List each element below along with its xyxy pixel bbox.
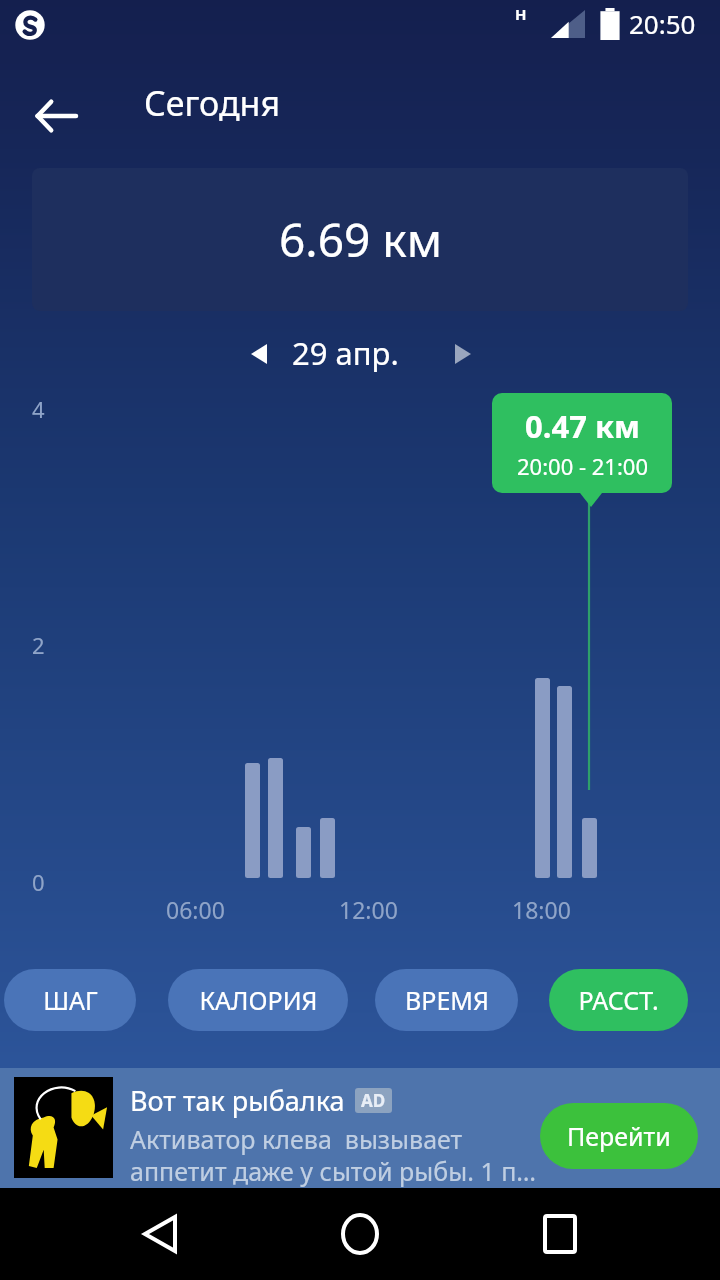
staticText: 18:00 xyxy=(512,894,571,925)
button[interactable]: Вот так рыбалка xyxy=(0,1068,720,1188)
staticText: РАССТ. xyxy=(578,983,659,1017)
button[interactable]: Home xyxy=(320,1194,400,1274)
button[interactable]: ВРЕМЯ xyxy=(375,969,518,1031)
button[interactable]: Back xyxy=(120,1194,200,1274)
staticText: 12:00 xyxy=(339,894,398,925)
staticText: КАЛОРИЯ xyxy=(199,983,318,1017)
button[interactable]: 6.69 км xyxy=(32,168,688,311)
button[interactable]: РАССТ. xyxy=(549,969,688,1031)
button[interactable]: Recents xyxy=(520,1194,600,1274)
staticText: ВРЕМЯ xyxy=(405,983,489,1017)
staticText: AD xyxy=(361,1089,386,1112)
staticText: 0 xyxy=(32,867,45,897)
staticText: Перейти xyxy=(567,1119,671,1153)
button[interactable]: Перейти xyxy=(540,1103,698,1169)
staticText: 0.47 км xyxy=(525,405,641,447)
staticText: 06:00 xyxy=(166,894,225,925)
staticText: аппетит даже у сытой рыбы. 1 п… xyxy=(130,1154,537,1188)
staticText: 20:00 - 21:00 xyxy=(517,451,648,481)
staticText: ШАГ xyxy=(43,983,98,1017)
button[interactable]: 0.47 км xyxy=(492,393,672,493)
staticText: 29 апр. xyxy=(292,332,399,374)
staticText: Сегодня xyxy=(144,80,281,126)
button[interactable]: Next day xyxy=(434,330,492,378)
staticText: Активатор клева вызывает xyxy=(130,1122,463,1156)
staticText: 4 xyxy=(32,394,45,424)
staticText: 2 xyxy=(32,630,45,660)
button[interactable]: Previous day xyxy=(230,330,288,378)
button[interactable]: ШАГ xyxy=(4,969,136,1031)
staticText: Вот так рыбалка xyxy=(130,1082,345,1119)
button[interactable]: КАЛОРИЯ xyxy=(168,969,348,1031)
button[interactable]: Back xyxy=(20,80,92,152)
staticText: 20:50 xyxy=(629,6,696,41)
staticText: 6.69 км xyxy=(279,208,442,271)
staticText: H xyxy=(515,4,527,24)
